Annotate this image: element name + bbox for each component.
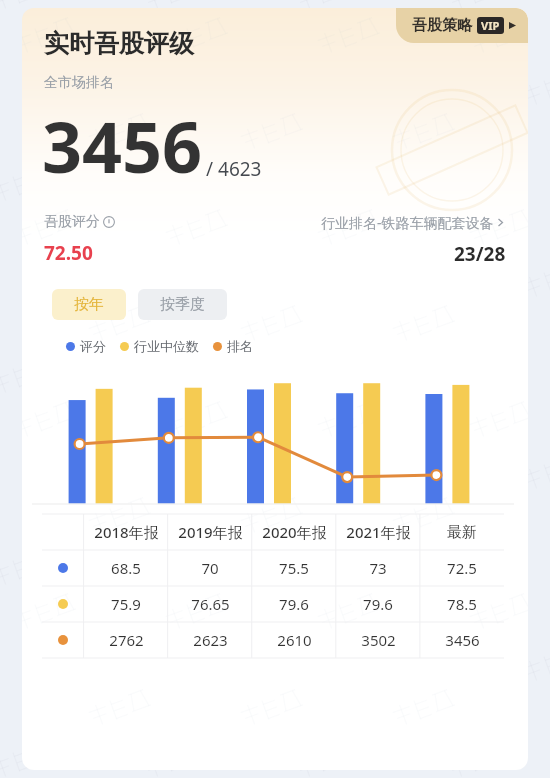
staticText: 3502 <box>361 630 396 650</box>
staticText: 75.5 <box>279 558 309 578</box>
staticText: 吾股评分 <box>44 213 100 231</box>
staticText: 吾股策略 <box>412 16 472 35</box>
staticText: 23/28 <box>454 241 506 267</box>
staticText: 行业排名-铁路车辆配套设备 <box>321 213 494 232</box>
staticText: 按年 <box>74 295 104 314</box>
staticText: 评分 <box>80 338 106 354</box>
staticText: 78.5 <box>447 594 477 614</box>
staticText: 72.50 <box>44 240 93 266</box>
staticText: 72.5 <box>447 558 477 578</box>
staticText: 2018年报 <box>94 522 159 542</box>
staticText: 76.65 <box>191 594 230 614</box>
staticText: 2021年报 <box>346 522 411 542</box>
staticText: 75.9 <box>111 594 141 614</box>
staticText: 68.5 <box>111 558 141 578</box>
staticText: 73 <box>369 558 387 578</box>
staticText: 79.6 <box>363 594 393 614</box>
button[interactable]: 按年 <box>52 289 126 320</box>
staticText: 3456 <box>445 630 480 650</box>
staticText: 2762 <box>109 630 144 650</box>
staticText: 2019年报 <box>178 522 243 542</box>
staticText: 79.6 <box>279 594 309 614</box>
staticText: VIP <box>481 18 500 33</box>
staticText: 70 <box>201 558 219 578</box>
staticText: 实时吾股评级 <box>44 28 194 59</box>
staticText: 最新 <box>447 523 477 542</box>
staticText: / 4623 <box>206 156 262 182</box>
staticText: 2623 <box>193 630 228 650</box>
staticText: 行业中位数 <box>134 338 199 354</box>
staticText: 3456 <box>42 98 203 193</box>
button[interactable]: 按季度 <box>138 289 227 320</box>
staticText: 2020年报 <box>262 522 327 542</box>
staticText: 2610 <box>277 630 312 650</box>
staticText: 按季度 <box>160 295 205 314</box>
staticText: 全市场排名 <box>44 74 114 92</box>
button[interactable]: 吾股策略 <box>396 8 528 43</box>
staticText: 排名 <box>227 338 253 354</box>
button[interactable]: 行业排名-铁路车辆配套设备 <box>321 213 506 232</box>
